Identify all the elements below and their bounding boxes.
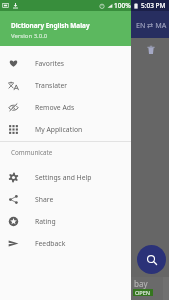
button[interactable]: EN ⇄ MA <box>136 20 169 30</box>
button[interactable]: Settings and Help <box>0 166 131 188</box>
staticText: Remove Ads <box>35 103 75 112</box>
staticText: Share <box>35 195 54 204</box>
staticText: Favorites <box>35 59 65 68</box>
button[interactable]: Share <box>0 188 131 210</box>
button[interactable]: Translater <box>0 74 131 96</box>
staticText: Rating <box>35 217 56 226</box>
staticText: Version 3.0.0 <box>11 32 48 40</box>
button[interactable]: Feedback <box>0 232 131 254</box>
staticText: Communicate <box>11 148 53 157</box>
button[interactable]: Remove Ads <box>0 96 131 118</box>
staticText: My Application <box>35 125 83 134</box>
staticText: EN ⇄ MA <box>136 20 167 30</box>
button[interactable]: My Application <box>0 118 131 140</box>
staticText: 5:03 PM <box>141 1 166 10</box>
button[interactable]: Delete <box>144 43 158 57</box>
button[interactable]: OPEN <box>135 289 151 296</box>
staticText: Dictionary English Malay <box>11 21 90 30</box>
button[interactable]: Favorites <box>0 52 131 74</box>
staticText: Settings and Help <box>35 173 92 182</box>
button[interactable]: Rating <box>0 210 131 232</box>
staticText: Feedback <box>35 239 66 248</box>
staticText: 100% <box>114 1 131 10</box>
staticText: bay <box>134 278 148 289</box>
staticText: Translater <box>35 81 68 90</box>
button[interactable]: Search <box>137 245 166 274</box>
staticText: OPEN <box>135 289 151 296</box>
